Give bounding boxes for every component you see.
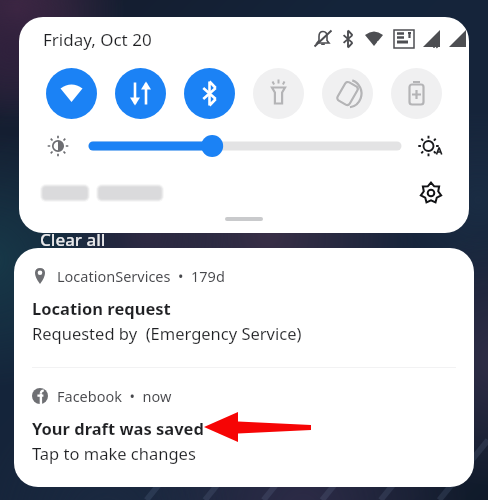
button[interactable]: Auto rotate	[322, 68, 373, 119]
button[interactable]: Flashlight	[253, 68, 304, 119]
button[interactable]: Bluetooth	[184, 68, 235, 119]
staticText: Requested by (Emergency Service)	[32, 322, 302, 344]
button[interactable]: Settings	[415, 177, 447, 209]
staticText: Your draft was saved	[32, 417, 204, 439]
button[interactable]: Battery saver	[391, 68, 442, 119]
staticText: LocationServices • 179d	[57, 266, 225, 286]
button[interactable]	[93, 133, 397, 159]
button[interactable]: LocationServices • 179d	[14, 248, 474, 367]
button[interactable]: Auto brightness	[415, 131, 445, 161]
button[interactable]: Brightness	[43, 131, 73, 161]
button[interactable]: Wi-Fi	[46, 68, 97, 119]
button[interactable]: Mobile data	[115, 68, 166, 119]
staticText: Tap to make changes	[32, 442, 196, 464]
staticText: Friday, Oct 20	[43, 28, 152, 51]
staticText: Clear all	[40, 228, 106, 251]
staticText: Facebook • now	[57, 386, 172, 406]
staticText: Location request	[32, 297, 171, 319]
button[interactable]: Facebook • now	[14, 368, 474, 487]
